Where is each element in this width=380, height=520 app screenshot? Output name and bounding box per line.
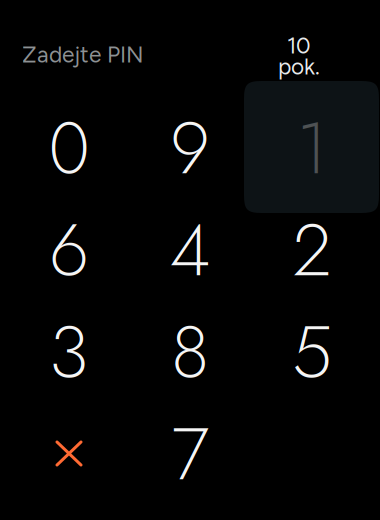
staticText: 2 bbox=[292, 198, 331, 302]
staticText: Zadejte PIN bbox=[22, 41, 144, 68]
staticText: 6 bbox=[49, 198, 89, 302]
button[interactable]: 3 bbox=[10, 304, 128, 400]
staticText: pok. bbox=[278, 53, 320, 80]
button[interactable]: 4 bbox=[131, 202, 249, 298]
staticText: 4 bbox=[169, 198, 210, 302]
button[interactable]: 2 bbox=[253, 202, 371, 298]
staticText: 3 bbox=[49, 300, 89, 404]
button[interactable]: 9 bbox=[131, 100, 249, 196]
button[interactable]: 7 bbox=[131, 406, 249, 502]
staticText: 5 bbox=[292, 300, 332, 404]
button[interactable]: 0 bbox=[10, 100, 128, 196]
button[interactable]: 1 bbox=[253, 100, 371, 196]
staticText: 9 bbox=[170, 96, 210, 200]
button[interactable]: Cancel bbox=[10, 405, 128, 501]
staticText: 1 bbox=[296, 96, 327, 200]
staticText: 8 bbox=[171, 300, 209, 404]
button[interactable]: 5 bbox=[253, 304, 371, 400]
button[interactable]: 6 bbox=[10, 202, 128, 298]
staticText: 7 bbox=[171, 402, 208, 506]
staticText: 0 bbox=[48, 96, 89, 200]
staticText: 10 bbox=[287, 32, 311, 59]
button[interactable]: 8 bbox=[131, 304, 249, 400]
